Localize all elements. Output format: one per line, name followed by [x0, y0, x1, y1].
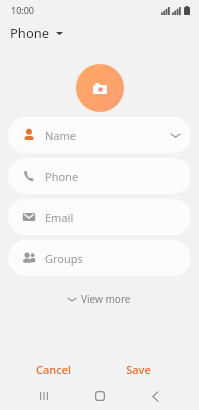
staticText: Cancel [36, 362, 71, 377]
staticText: Groups [45, 251, 83, 266]
button[interactable]: Save [116, 359, 161, 380]
button[interactable]: Home [89, 385, 111, 407]
staticText: Save [126, 362, 151, 377]
staticText: Phone [45, 169, 79, 184]
button[interactable]: Phone [8, 158, 191, 194]
button[interactable]: Add photo [76, 64, 124, 112]
button[interactable]: Recents [33, 385, 55, 407]
button[interactable]: Name [8, 117, 191, 153]
button[interactable]: Back [144, 385, 166, 407]
staticText: Phone [10, 24, 50, 42]
staticText: 10:00 [11, 4, 35, 16]
button[interactable]: View more [60, 289, 139, 309]
button[interactable]: Groups [8, 240, 191, 276]
button[interactable]: Phone [10, 24, 63, 42]
button[interactable]: Cancel [26, 359, 81, 380]
staticText: Name [45, 128, 77, 143]
staticText: View more [81, 292, 131, 306]
button[interactable]: Email [8, 199, 191, 235]
staticText: Email [45, 210, 74, 225]
